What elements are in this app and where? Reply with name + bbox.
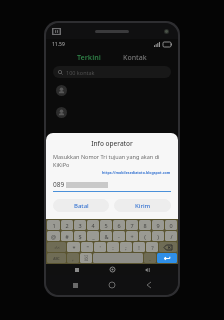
- button[interactable]: Home: [104, 277, 120, 293]
- staticText: -: [118, 233, 120, 240]
- button[interactable]: ": [81, 242, 93, 252]
- staticText: ": [86, 244, 89, 251]
- staticText: @: [51, 233, 56, 240]
- button[interactable]: Back: [141, 277, 157, 293]
- staticText: Masukkan Nomor Tri tujuan yang akan di K…: [53, 153, 171, 169]
- button[interactable]: ;: [120, 242, 132, 252]
- button[interactable]: 12 34: [80, 253, 92, 263]
- staticText: Batal: [74, 202, 89, 210]
- button[interactable]: ,: [67, 253, 79, 263]
- button[interactable]: 2: [61, 220, 73, 230]
- button[interactable]: +: [126, 231, 138, 241]
- button[interactable]: &: [100, 231, 112, 241]
- staticText: 9: [156, 222, 160, 229]
- staticText: ': [99, 244, 101, 251]
- staticText: Kirim: [135, 202, 151, 210]
- staticText: +: [130, 233, 134, 240]
- button[interactable]: $: [74, 231, 86, 241]
- button[interactable]: 5: [100, 220, 112, 230]
- staticText: .: [149, 255, 151, 262]
- staticText: 4: [91, 222, 95, 229]
- staticText: _: [92, 233, 95, 240]
- staticText: :: [112, 244, 114, 251]
- button[interactable]: Terkini: [70, 51, 108, 65]
- button[interactable]: Kontak: [116, 51, 154, 65]
- button[interactable]: 9: [152, 220, 164, 230]
- button[interactable]: [46, 83, 178, 97]
- staticText: 5: [104, 222, 108, 229]
- button[interactable]: [93, 253, 143, 263]
- staticText: !: [138, 244, 140, 251]
- button[interactable]: :: [107, 242, 119, 252]
- button[interactable]: ): [152, 231, 164, 241]
- button[interactable]: @: [47, 231, 60, 241]
- staticText: $: [78, 233, 82, 240]
- button[interactable]: Backspace: [159, 242, 177, 252]
- staticText: 3: [78, 222, 82, 229]
- button[interactable]: 1: [47, 220, 60, 230]
- staticText: https://mobilesediatoto.blogspot.com: [102, 170, 171, 175]
- button[interactable]: ABC: [47, 253, 66, 263]
- button[interactable]: 8: [139, 220, 151, 230]
- button[interactable]: -: [113, 231, 125, 241]
- staticText: =\<: [54, 245, 60, 250]
- staticText: 2: [65, 222, 69, 229]
- button[interactable]: 100 kontak: [53, 66, 171, 78]
- button[interactable]: 4: [87, 220, 99, 230]
- staticText: ABC: [53, 256, 60, 261]
- staticText: ): [157, 233, 159, 240]
- button[interactable]: (: [139, 231, 151, 241]
- staticText: 12 34: [84, 254, 88, 262]
- staticText: 100 kontak: [66, 69, 95, 76]
- staticText: 089: [53, 180, 65, 189]
- button[interactable]: .: [144, 253, 156, 263]
- button[interactable]: Settings: [107, 264, 118, 275]
- button[interactable]: Hide keyboard: [142, 264, 153, 275]
- staticText: (: [144, 233, 146, 240]
- staticText: Kontak: [123, 53, 147, 63]
- staticText: ?: [151, 244, 154, 251]
- staticText: 7: [130, 222, 134, 229]
- staticText: &: [104, 233, 109, 240]
- button[interactable]: ': [94, 242, 106, 252]
- button[interactable]: ?: [146, 242, 158, 252]
- button[interactable]: [46, 105, 178, 119]
- staticText: 6: [117, 222, 121, 229]
- button[interactable]: #: [61, 231, 73, 241]
- staticText: 8: [143, 222, 147, 229]
- button[interactable]: *: [67, 242, 80, 252]
- button[interactable]: _: [87, 231, 99, 241]
- button[interactable]: 7: [126, 220, 138, 230]
- button[interactable]: Batal: [53, 199, 109, 212]
- staticText: 1: [52, 222, 56, 229]
- staticText: #: [65, 233, 69, 240]
- staticText: *: [72, 244, 76, 251]
- staticText: ,: [72, 255, 74, 262]
- button[interactable]: Kirim: [114, 199, 171, 212]
- staticText: ;: [125, 244, 127, 251]
- staticText: /: [170, 233, 173, 240]
- staticText: Terkini: [77, 53, 101, 63]
- button[interactable]: Recents: [67, 277, 83, 293]
- button[interactable]: /: [165, 231, 177, 241]
- staticText: Info operator: [91, 139, 133, 148]
- button[interactable]: !: [133, 242, 145, 252]
- button[interactable]: Keyboard layout: [71, 264, 82, 275]
- staticText: 0: [169, 222, 173, 229]
- button[interactable]: 089: [53, 180, 171, 192]
- button[interactable]: 6: [113, 220, 125, 230]
- button[interactable]: Enter: [157, 253, 177, 263]
- button[interactable]: =\<: [47, 242, 66, 252]
- staticText: 11.59: [52, 41, 65, 48]
- button[interactable]: 3: [74, 220, 86, 230]
- button[interactable]: 0: [165, 220, 177, 230]
